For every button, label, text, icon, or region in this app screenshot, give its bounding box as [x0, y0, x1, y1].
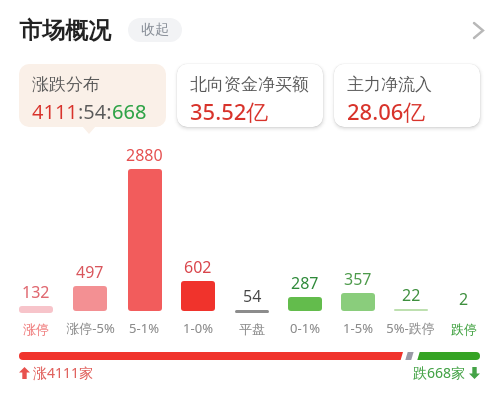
staticText: 跌668家 [413, 363, 466, 382]
staticText: 1-5% [343, 319, 373, 337]
staticText: :54: [78, 98, 112, 125]
staticText: 4111 [32, 98, 78, 125]
staticText: 涨停 [23, 321, 49, 337]
staticText: 市场概况 [19, 16, 111, 45]
staticText: 0-1% [290, 319, 320, 337]
staticText: 1-0% [183, 319, 213, 337]
staticText: 54 [243, 285, 262, 307]
staticText: 287 [291, 272, 319, 294]
staticText: 收起 [141, 21, 169, 39]
button[interactable]: 收起 [128, 18, 182, 42]
staticText: 5-1% [129, 319, 159, 337]
staticText: 平盘 [239, 321, 265, 337]
staticText: 2880 [126, 144, 163, 166]
staticText: 668 [112, 98, 147, 125]
staticText: 357 [344, 268, 372, 290]
staticText: 28.06亿 [347, 96, 426, 126]
staticText: 2 [459, 288, 469, 310]
staticText: 497 [76, 261, 104, 283]
staticText: 北向资金净买额 [190, 74, 309, 95]
staticText: 涨停-5% [66, 319, 115, 337]
staticText: 5%-跌停 [386, 319, 435, 337]
staticText: 涨4111家 [33, 363, 94, 382]
staticText: 主力净流入 [347, 74, 432, 95]
staticText: 涨跌分布 [32, 74, 100, 95]
staticText: 602 [184, 256, 212, 278]
button[interactable]: 主力净流入 [334, 64, 480, 127]
button[interactable]: 北向资金净买额 [177, 64, 323, 127]
staticText: 132 [22, 281, 50, 303]
staticText: 35.52亿 [190, 96, 269, 126]
staticText: 跌停 [451, 321, 477, 337]
button[interactable]: More [463, 15, 493, 45]
button[interactable]: 涨跌分布 [19, 64, 166, 127]
staticText: 22 [402, 284, 421, 306]
